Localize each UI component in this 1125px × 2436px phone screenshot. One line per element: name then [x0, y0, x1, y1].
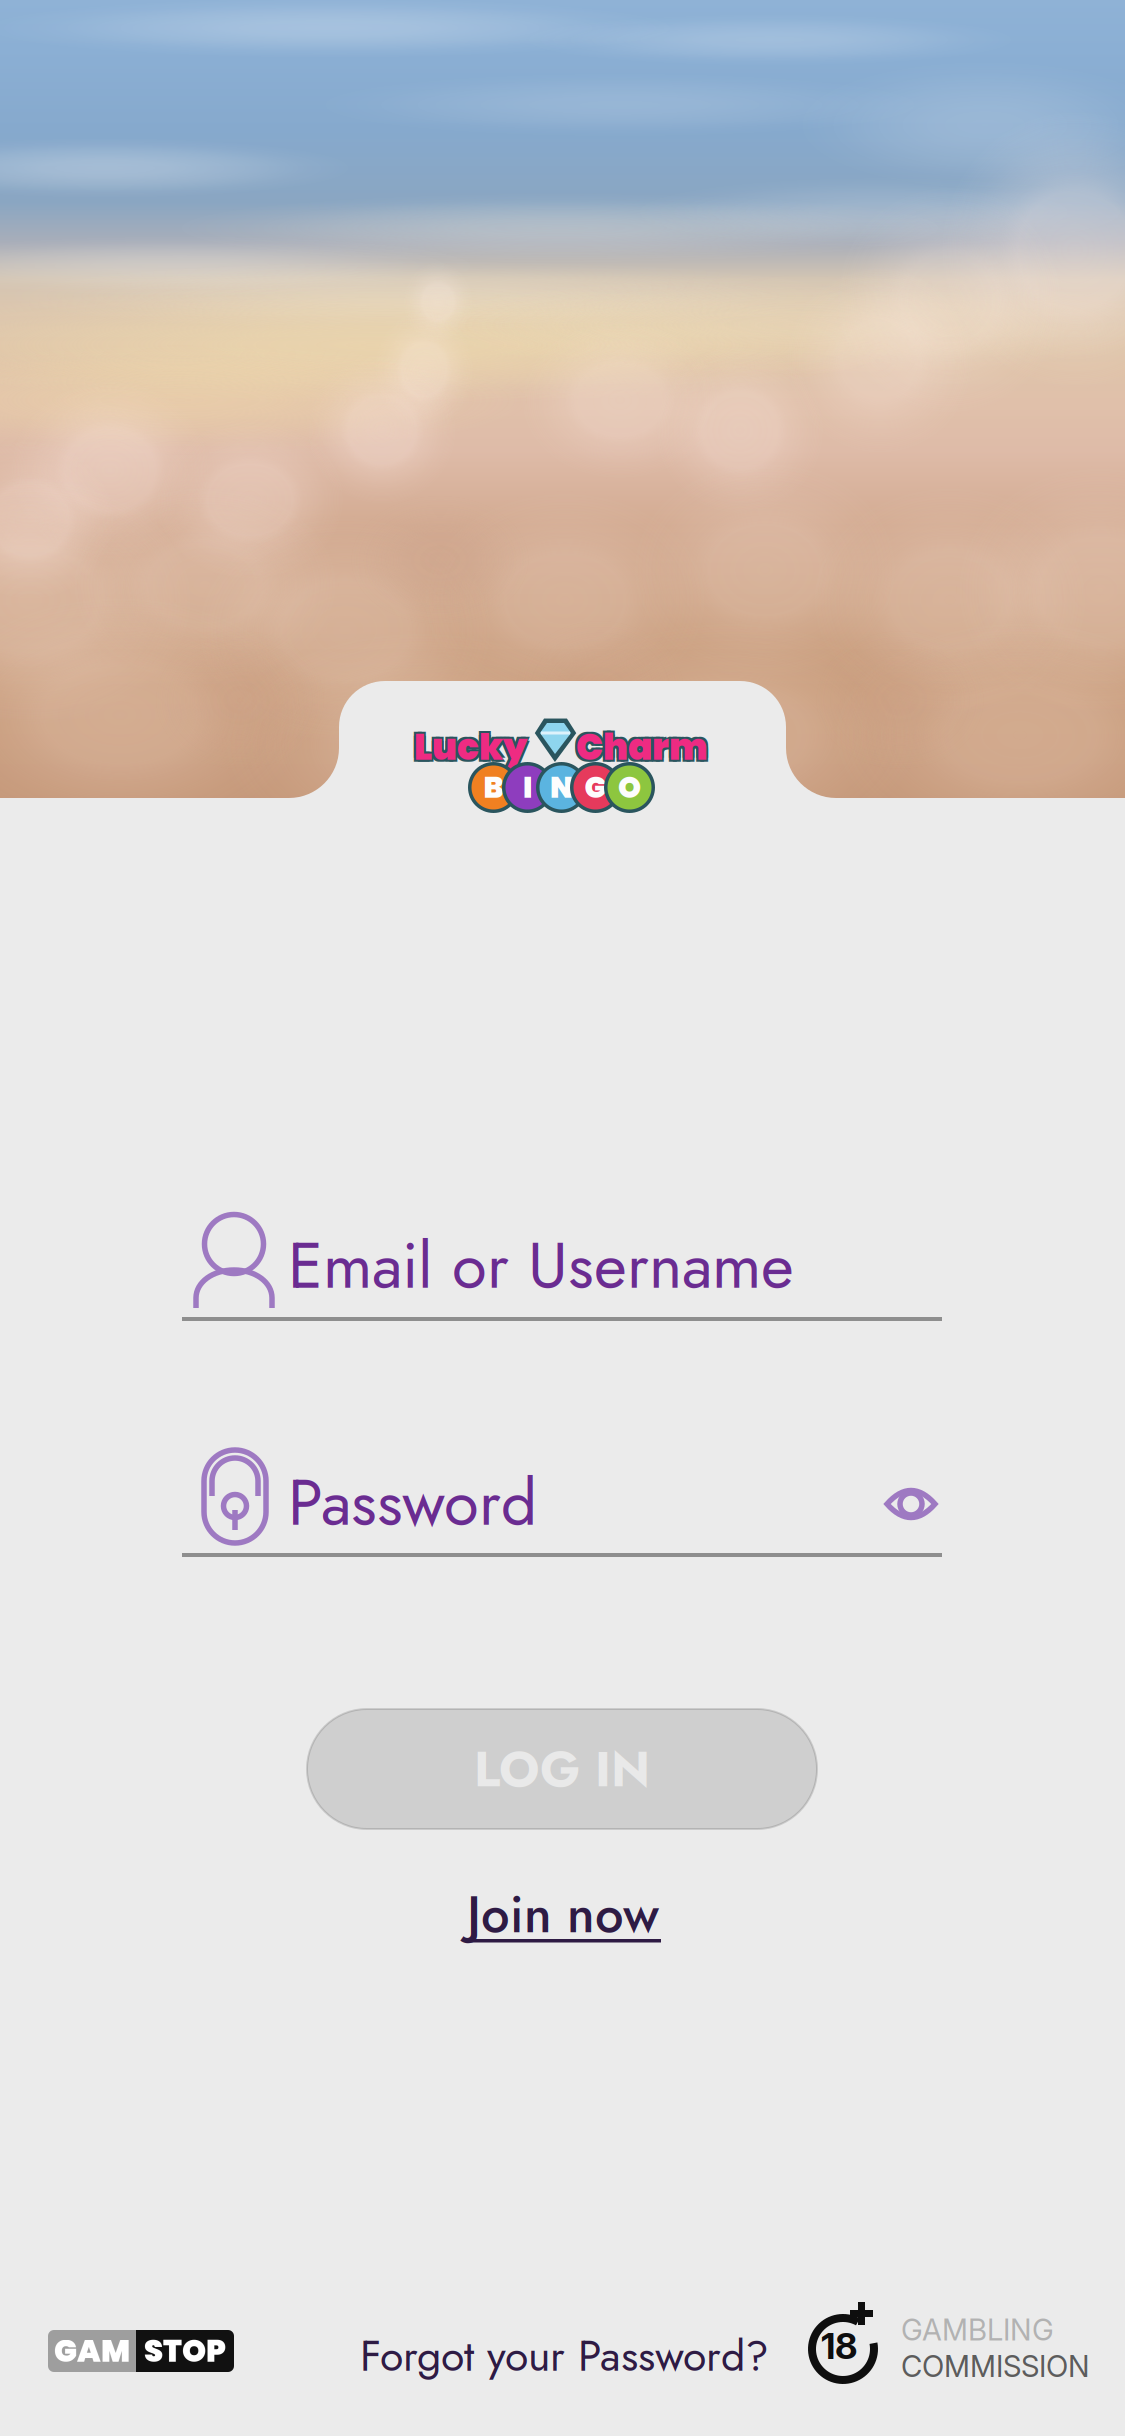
staticText: COMMISSION [901, 2348, 1090, 2384]
staticText: Charm [578, 724, 710, 774]
staticText: G [584, 767, 606, 808]
button[interactable]: Show password [870, 1471, 952, 1537]
staticText: Lucky [414, 722, 527, 772]
staticText: I [523, 767, 532, 808]
staticText: B [483, 767, 503, 808]
staticText: Charm [574, 720, 706, 770]
staticText: Lucky [412, 720, 525, 770]
button[interactable]: Join now [466, 1878, 661, 1944]
staticText: Join now [467, 1878, 659, 1951]
button[interactable]: Forgot your Password? [360, 2325, 769, 2387]
staticText: Lucky [416, 720, 529, 770]
staticText: Lucky [416, 724, 529, 774]
staticText: Charm [576, 722, 708, 772]
staticText: STOP [144, 2329, 226, 2372]
button[interactable]: LOG IN [307, 1709, 817, 1829]
staticText: Email or Username [288, 1220, 794, 1311]
staticText: N [550, 767, 573, 808]
staticText: Charm [578, 720, 710, 770]
staticText: O [618, 767, 641, 808]
staticText: Forgot your Password? [360, 2325, 769, 2387]
staticText: 18 [821, 2324, 857, 2368]
staticText: LOG IN [474, 1733, 650, 1805]
staticText: Lucky [412, 724, 525, 774]
staticText: GAMBLING [901, 2312, 1054, 2347]
staticText: Charm [574, 724, 706, 774]
staticText: GAM [54, 2329, 130, 2372]
staticText: Password [288, 1457, 537, 1548]
